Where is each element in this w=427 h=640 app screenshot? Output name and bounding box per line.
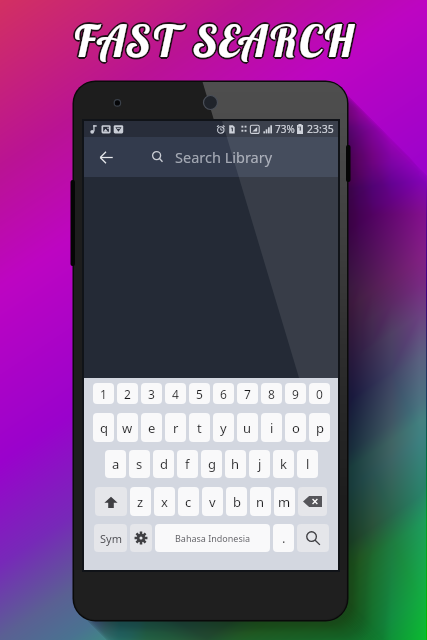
button[interactable]: m (274, 487, 295, 516)
staticText: d (160, 455, 168, 473)
button[interactable]: s (129, 450, 150, 478)
staticText: 6 (220, 386, 227, 402)
staticText: q (100, 419, 108, 437)
staticText: FAST SEARCH (71, 12, 354, 67)
button[interactable]: 6 (213, 383, 234, 404)
button[interactable]: Sym (94, 524, 127, 552)
staticText: 9 (292, 386, 299, 402)
button[interactable]: t (189, 413, 210, 442)
staticText: FAST SEARCH (71, 14, 354, 69)
button[interactable]: n (250, 487, 271, 516)
staticText: Bahasa Indonesia (175, 532, 251, 544)
button[interactable]: e (141, 413, 162, 442)
button[interactable]: 5 (189, 383, 210, 404)
button[interactable]: 3 (141, 383, 162, 404)
staticText: y (220, 419, 227, 437)
button[interactable]: y (213, 413, 234, 442)
button[interactable]: c (178, 487, 199, 516)
staticText: p (316, 419, 324, 437)
staticText: Search Library (175, 147, 273, 167)
button[interactable]: 1 (93, 383, 114, 404)
staticText: FAST SEARCH (73, 12, 356, 67)
staticText: 5 (196, 386, 203, 402)
staticText: FAST SEARCH (71, 14, 354, 69)
button[interactable]: o (285, 413, 306, 442)
button[interactable]: a (105, 450, 126, 478)
staticText: 0 (316, 386, 323, 402)
button[interactable]: x (154, 487, 175, 516)
staticText: 3 (148, 386, 155, 402)
staticText: FAST SEARCH (74, 13, 357, 68)
staticText: s (136, 455, 143, 473)
staticText: . (282, 529, 286, 547)
staticText: u (243, 419, 252, 437)
staticText: i (270, 419, 274, 437)
staticText: k (280, 455, 287, 473)
staticText: 2 (124, 386, 131, 402)
staticText: FAST SEARCH (73, 12, 356, 67)
staticText: FAST SEARCH (72, 15, 355, 70)
staticText: FAST SEARCH (73, 14, 356, 69)
button[interactable]: q (93, 413, 114, 442)
staticText: z (137, 493, 144, 511)
staticText: h (231, 455, 240, 473)
button[interactable]: f (177, 450, 198, 478)
button[interactable]: 8 (261, 383, 282, 404)
staticText: FAST SEARCH (72, 13, 355, 68)
button[interactable]: z (130, 487, 151, 516)
staticText: o (292, 419, 300, 437)
button[interactable]: Keyboard settings (130, 524, 152, 552)
button[interactable]: w (117, 413, 138, 442)
button[interactable]: 2 (117, 383, 138, 404)
button[interactable]: j (249, 450, 270, 478)
staticText: n (256, 493, 265, 511)
button[interactable]: 9 (285, 383, 306, 404)
staticText: 7 (244, 386, 251, 402)
staticText: 1 (100, 386, 107, 402)
staticText: f (185, 455, 190, 473)
staticText: b (233, 493, 241, 511)
button[interactable]: u (237, 413, 258, 442)
staticText: Sym (100, 531, 122, 546)
staticText: a (112, 455, 120, 473)
button[interactable]: . (273, 524, 294, 552)
button[interactable]: Search (297, 524, 329, 552)
staticText: l (306, 455, 310, 473)
button[interactable]: v (202, 487, 223, 516)
staticText: t (197, 419, 202, 437)
button[interactable]: d (153, 450, 174, 478)
staticText: FAST SEARCH (70, 13, 353, 68)
staticText: 8 (268, 386, 275, 402)
button[interactable]: 7 (237, 383, 258, 404)
button[interactable]: Backspace (298, 487, 327, 516)
button[interactable]: r (165, 413, 186, 442)
staticText: w (122, 419, 133, 437)
staticText: 73% (275, 122, 295, 136)
staticText: 23:35 (307, 122, 334, 136)
staticText: x (161, 493, 168, 511)
button[interactable]: p (309, 413, 330, 442)
button[interactable]: Bahasa Indonesia (155, 524, 270, 552)
staticText: g (208, 455, 216, 473)
button[interactable]: h (225, 450, 246, 478)
button[interactable]: b (226, 487, 247, 516)
staticText: r (173, 419, 179, 437)
button[interactable]: 4 (165, 383, 186, 404)
staticText: 4 (172, 386, 179, 402)
staticText: m (278, 493, 291, 511)
staticText: j (258, 455, 262, 473)
staticText: v (209, 493, 216, 511)
button[interactable]: l (297, 450, 318, 478)
staticText: e (148, 419, 156, 437)
button[interactable]: Shift (95, 487, 127, 516)
button[interactable]: g (201, 450, 222, 478)
button[interactable]: i (261, 413, 282, 442)
button[interactable]: Back (92, 143, 120, 171)
staticText: FAST SEARCH (71, 12, 354, 67)
button[interactable]: k (273, 450, 294, 478)
button[interactable]: 0 (309, 383, 330, 404)
staticText: FAST SEARCH (72, 11, 355, 66)
staticText: c (185, 493, 192, 511)
staticText: FAST SEARCH (73, 14, 356, 69)
